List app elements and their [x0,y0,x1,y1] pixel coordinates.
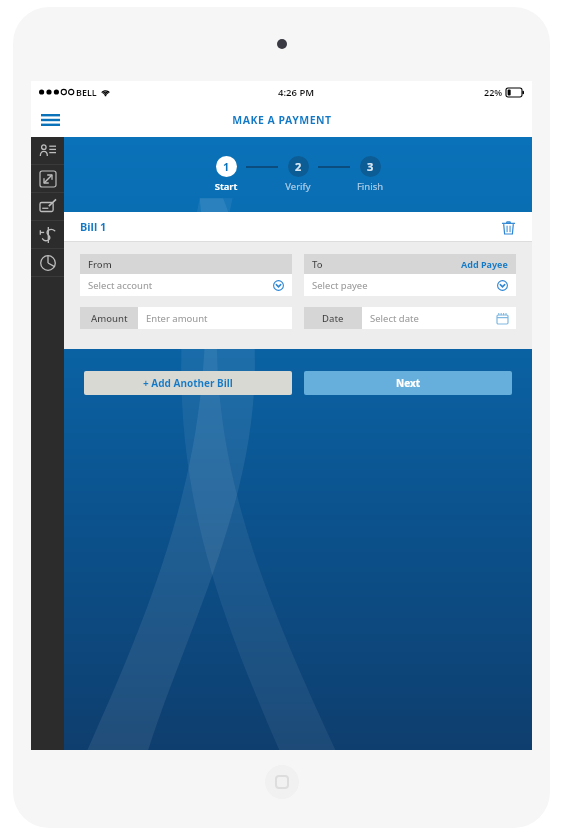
button[interactable]: Select account [80,274,292,296]
button[interactable]: Payees [31,137,64,165]
button[interactable]: Next [304,371,512,395]
staticText: 4:26 PM [278,86,315,99]
staticText: 22% [484,86,503,98]
staticText: Date [322,312,344,325]
button[interactable]: Add Payee [461,258,508,270]
staticText: Amount [91,312,128,325]
button[interactable]: Select payee [304,274,516,296]
staticText: MAKE A PAYMENT [232,113,332,127]
staticText: Select date [370,312,419,325]
button[interactable]: Deposit [31,193,64,221]
button[interactable]: 2 [278,156,318,193]
staticText: Start [206,180,246,193]
button[interactable]: Enter amount [138,307,292,329]
staticText: Verify [278,180,318,193]
button[interactable]: Select date [362,307,516,329]
staticText: BELL [76,86,97,98]
button[interactable]: 1 [206,156,246,193]
staticText: Select account [88,279,153,292]
button[interactable]: Menu [38,108,62,132]
staticText: 2 [295,159,302,174]
staticText: Enter amount [146,312,208,325]
button[interactable]: + Add Another Bill [84,371,292,395]
staticText: + Add Another Bill [143,376,233,390]
staticText: From [88,258,112,271]
staticText: Finish [350,180,390,193]
button[interactable]: Transfer [31,165,64,193]
staticText: Next [396,376,421,390]
button[interactable]: Delete bill [498,217,518,237]
staticText: 3 [367,159,374,174]
staticText: Add Payee [461,258,508,270]
staticText: Select payee [312,279,368,292]
button[interactable]: 3 [350,156,390,193]
button[interactable]: Pay Bills [31,221,64,249]
staticText: To [312,258,323,271]
staticText: 1 [223,159,230,174]
staticText: Bill 1 [80,219,107,234]
button[interactable]: Reports [31,249,64,277]
